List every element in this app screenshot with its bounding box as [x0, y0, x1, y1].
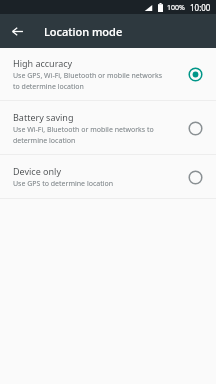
staticText: Use Wi-Fi, Bluetooth or mobile networks …: [13, 125, 154, 145]
staticText: Use GPS, Wi-Fi, Bluetooth or mobile netw…: [13, 71, 163, 91]
staticText: Use GPS to determine location: [13, 179, 114, 189]
staticText: 10:00: [190, 2, 211, 13]
staticText: Battery saving: [13, 111, 74, 123]
button[interactable]: High accuracy: [0, 48, 216, 100]
button[interactable]: Device only: [0, 155, 216, 198]
staticText: Location mode: [44, 24, 123, 39]
staticText: 100%: [167, 3, 185, 13]
button[interactable]: Back: [5, 19, 29, 43]
button[interactable]: Battery saving: [0, 101, 216, 154]
staticText: High accuracy: [13, 57, 73, 69]
staticText: Device only: [13, 165, 62, 177]
